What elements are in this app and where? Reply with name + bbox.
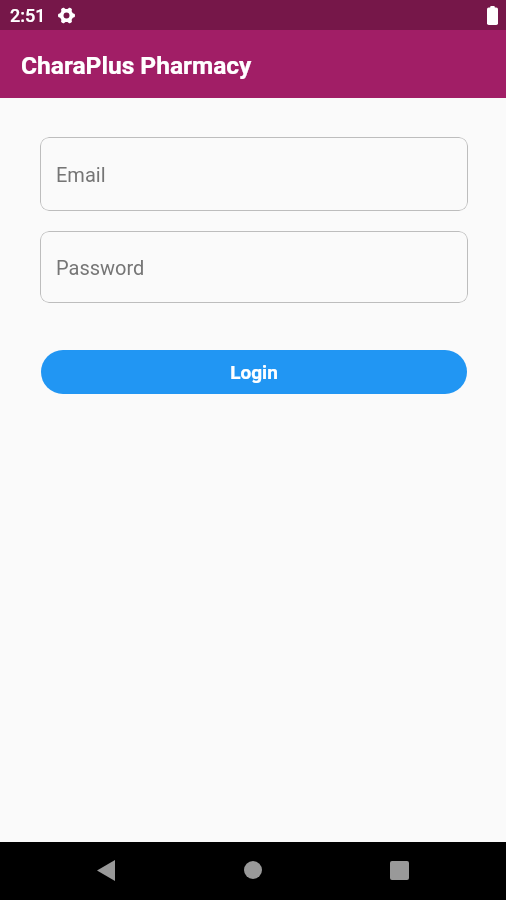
staticText: 2:51 bbox=[10, 5, 46, 26]
staticText: Email bbox=[56, 163, 106, 186]
staticText: Password bbox=[56, 256, 145, 279]
other: Settings bbox=[58, 7, 75, 24]
button[interactable]: Password bbox=[40, 231, 468, 303]
other: Battery full bbox=[487, 6, 498, 25]
button[interactable]: Recent apps bbox=[371, 842, 427, 898]
button[interactable]: Login bbox=[41, 350, 467, 394]
staticText: Login bbox=[230, 361, 278, 383]
button[interactable]: Email bbox=[40, 137, 468, 211]
button[interactable]: Back bbox=[78, 842, 134, 898]
staticText: CharaPlus Pharmacy bbox=[21, 51, 252, 80]
button[interactable]: Home bbox=[225, 842, 281, 898]
